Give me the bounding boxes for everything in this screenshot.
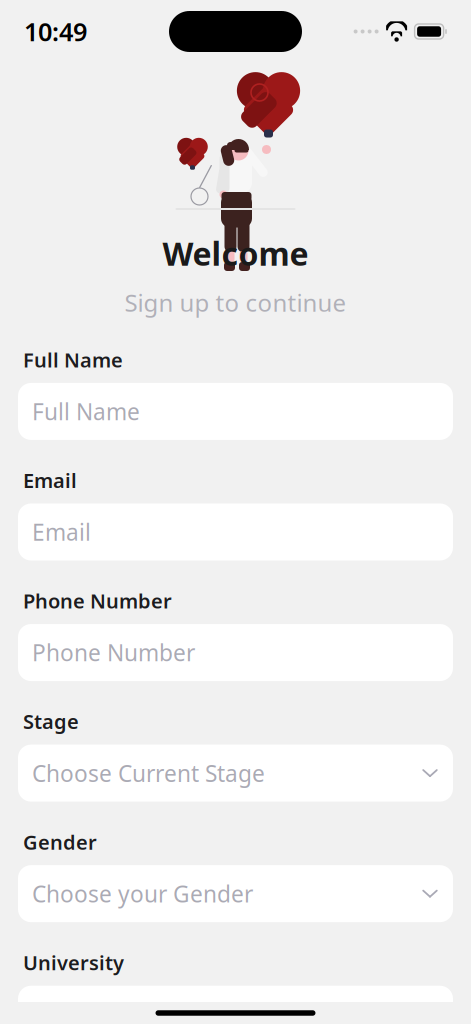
button[interactable]: Choose Current Stage [18, 745, 453, 802]
button[interactable]: Full Name [18, 383, 453, 440]
staticText: Welcome [162, 232, 308, 274]
staticText: Gender [23, 829, 97, 855]
button[interactable]: Email [18, 503, 453, 560]
button[interactable]: Choose your University [18, 986, 453, 1024]
button[interactable]: Phone Number [18, 624, 453, 681]
staticText: Choose your University [32, 999, 281, 1024]
staticText: 10:49 [24, 15, 87, 48]
staticText: Full Name [23, 346, 123, 373]
staticText: Sign up to continue [124, 286, 346, 318]
staticText: Email [23, 467, 77, 493]
staticText: University [23, 949, 124, 976]
staticText: Stage [23, 708, 79, 735]
staticText: Phone Number [23, 587, 172, 614]
staticText: Full Name [32, 396, 140, 426]
staticText: Phone Number [32, 637, 195, 668]
button[interactable]: Choose your Gender [18, 865, 453, 922]
staticText: Email [32, 517, 91, 547]
staticText: Choose your Gender [32, 879, 253, 909]
staticText: Choose Current Stage [32, 758, 265, 788]
